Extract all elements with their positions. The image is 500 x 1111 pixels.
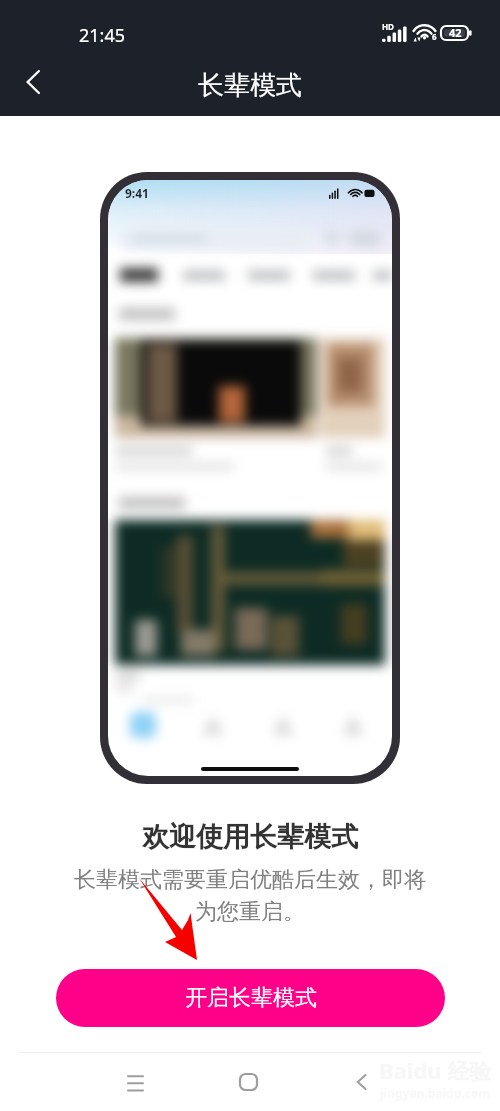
button[interactable]: Home	[224, 1058, 272, 1106]
staticText: 长辈模式	[198, 69, 302, 102]
button[interactable]: Back	[11, 60, 55, 104]
staticText: 9:41	[125, 185, 149, 201]
staticText: 开启长辈模式	[185, 984, 317, 1012]
staticText: 欢迎使用长辈模式	[142, 820, 358, 854]
staticText: 6	[432, 31, 437, 42]
button[interactable]: 开启长辈模式	[56, 969, 445, 1027]
staticText: 42	[449, 25, 462, 40]
button[interactable]: Back	[337, 1058, 385, 1106]
staticText: HD	[382, 21, 394, 32]
button[interactable]: Recent apps	[111, 1058, 159, 1106]
staticText: 长辈模式需要重启优酷后生效，即将 为您重启。	[0, 866, 500, 925]
staticText: Baidu 经验	[379, 1055, 492, 1085]
staticText: 21:45	[79, 23, 126, 48]
